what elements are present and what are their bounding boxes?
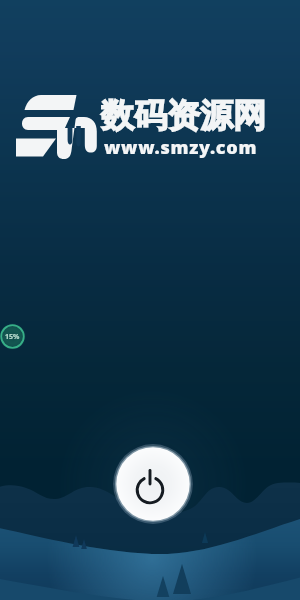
staticText: www.smzy.com xyxy=(104,135,258,160)
staticText: 15% xyxy=(5,332,20,342)
staticText: 数码资源网 xyxy=(101,95,266,137)
button[interactable]: Battery 15 percent xyxy=(0,323,26,350)
button[interactable]: Power xyxy=(111,442,195,526)
